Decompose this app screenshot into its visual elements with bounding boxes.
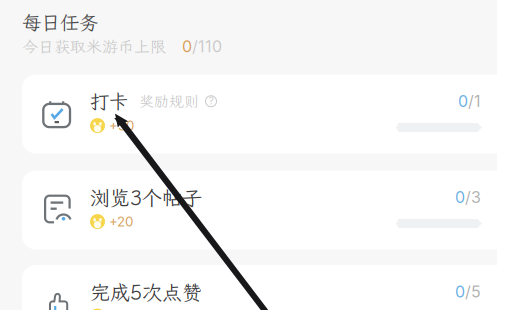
staticText: /110 <box>192 37 222 56</box>
staticText: 浏览3个帖子 <box>90 184 202 211</box>
staticText: /3 <box>465 187 481 207</box>
staticText: 0 <box>455 282 465 301</box>
staticText: 0 <box>458 91 468 111</box>
button[interactable]: 浏览3个帖子 <box>22 170 509 249</box>
staticText: 0 <box>455 187 465 207</box>
staticText: 今日获取米游币上限 <box>22 36 166 57</box>
button[interactable]: 完成5次点赞 <box>22 265 509 310</box>
staticText: +30 <box>109 117 134 134</box>
staticText: 打卡 <box>90 88 128 114</box>
button[interactable]: 打卡 <box>22 74 509 153</box>
staticText: ? <box>208 94 213 107</box>
staticText: +20 <box>109 213 133 230</box>
staticText: /1 <box>468 91 481 111</box>
staticText: /5 <box>465 282 481 301</box>
staticText: 每日任务 <box>22 9 98 35</box>
staticText: 奖励规则 <box>139 92 199 111</box>
staticText: 完成5次点赞 <box>90 279 202 305</box>
staticText: 0 <box>182 37 192 56</box>
